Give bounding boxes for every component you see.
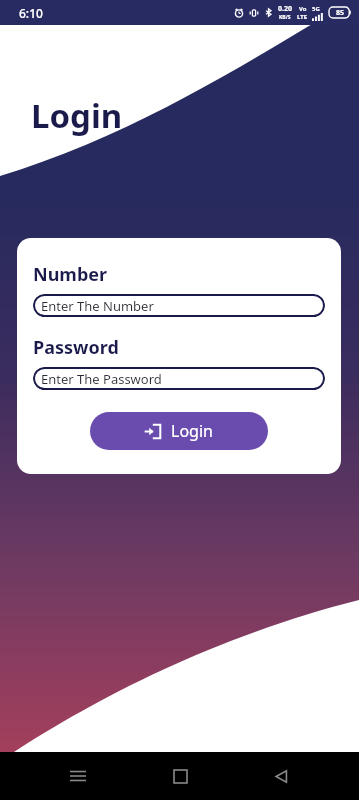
staticText: Login <box>171 420 213 442</box>
staticText: 0.20 <box>278 4 292 14</box>
button[interactable]: Recent apps <box>54 752 102 800</box>
staticText: Enter The Password <box>41 370 162 388</box>
staticText: Login <box>31 93 123 138</box>
staticText: Vo <box>299 5 307 13</box>
staticText: LTE <box>297 13 308 21</box>
button[interactable]: Home <box>156 752 204 800</box>
button[interactable]: Enter The Number <box>33 294 325 317</box>
staticText: KB/S <box>279 14 291 21</box>
staticText: 85 <box>336 8 345 18</box>
staticText: 5G <box>312 5 320 13</box>
staticText: Number <box>33 262 108 287</box>
staticText: Enter The Number <box>41 297 154 315</box>
button[interactable]: Back <box>257 752 305 800</box>
other: Login <box>145 423 162 440</box>
button[interactable]: Login <box>90 412 268 450</box>
staticText: 6:10 <box>19 5 43 21</box>
button[interactable]: Enter The Password <box>33 367 325 390</box>
staticText: Password <box>33 335 119 360</box>
